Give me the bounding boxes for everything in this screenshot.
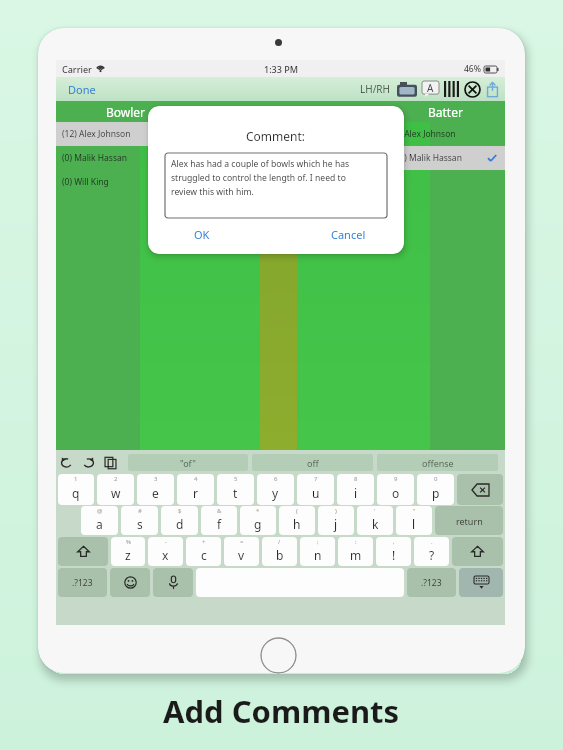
- staticText: x: [162, 547, 169, 563]
- button[interactable]: %: [111, 537, 145, 566]
- button[interactable]: LH/RH: [358, 79, 392, 99]
- button[interactable]: Redo: [82, 456, 95, 469]
- button[interactable]: =: [224, 537, 259, 566]
- button[interactable]: 8: [337, 474, 374, 505]
- button[interactable]: 1: [58, 474, 94, 505]
- staticText: m: [350, 547, 362, 563]
- button[interactable]: Camera: [397, 82, 417, 97]
- button[interactable]: (0) Alex Johnson: [385, 122, 505, 146]
- staticText: Alex has had a couple of bowls which he …: [171, 158, 350, 170]
- button[interactable]: &: [201, 506, 237, 535]
- button[interactable]: Stumps: [444, 81, 459, 97]
- staticText: (0) Alex Johnson: [392, 128, 456, 140]
- button[interactable]: 9: [377, 474, 414, 505]
- button[interactable]: #: [121, 506, 158, 535]
- button[interactable]: 0: [417, 474, 454, 505]
- button[interactable]: Emoji: [110, 568, 150, 597]
- button[interactable]: .?123: [58, 568, 107, 597]
- button[interactable]: Undo: [60, 456, 73, 469]
- button[interactable]: .?123: [407, 568, 456, 597]
- staticText: r: [193, 485, 198, 501]
- button[interactable]: Copy: [104, 456, 117, 469]
- button[interactable]: ;: [300, 537, 335, 566]
- button[interactable]: 6: [257, 474, 294, 505]
- staticText: (0) Malik Hassan: [62, 152, 128, 164]
- button[interactable]: Shift: [58, 537, 108, 566]
- button[interactable]: +: [186, 537, 221, 566]
- staticText: off: [307, 457, 319, 469]
- staticText: j: [334, 516, 338, 532]
- staticText: 4: [194, 475, 198, 483]
- staticText: ,: [393, 538, 395, 546]
- button[interactable]: (: [279, 506, 315, 535]
- button[interactable]: ): [318, 506, 354, 535]
- staticText: n: [314, 547, 322, 563]
- staticText: (12) Malik Hassan: [392, 152, 462, 164]
- staticText: ': [374, 507, 376, 515]
- button[interactable]: Shift: [452, 537, 503, 566]
- staticText: b: [276, 547, 284, 563]
- button[interactable]: Hide keyboard: [459, 568, 503, 597]
- button[interactable]: ": [396, 506, 432, 535]
- button[interactable]: 3: [137, 474, 174, 505]
- staticText: (12) Alex Johnson: [62, 128, 131, 140]
- staticText: struggled to control the length of. I ne…: [171, 172, 346, 184]
- button[interactable]: Share: [486, 81, 499, 97]
- button[interactable]: @: [81, 506, 118, 535]
- staticText: Carrier: [62, 63, 92, 75]
- staticText: 0: [434, 475, 438, 483]
- button[interactable]: return: [435, 506, 503, 535]
- staticText: ): [335, 507, 337, 515]
- button[interactable]: Done: [64, 79, 100, 100]
- staticText: review this with him.: [171, 186, 254, 198]
- staticText: (: [296, 507, 298, 515]
- button[interactable]: offense: [377, 454, 498, 471]
- staticText: =: [240, 538, 244, 546]
- staticText: o: [392, 485, 400, 501]
- button[interactable]: Alex has had a couple of bowls which he …: [165, 153, 387, 218]
- staticText: (0) Will King: [62, 176, 109, 188]
- button[interactable]: 4: [177, 474, 214, 505]
- staticText: Comment:: [246, 128, 306, 144]
- button[interactable]: Text: [422, 81, 439, 97]
- staticText: c: [201, 547, 207, 563]
- button[interactable]: (12) Malik Hassan: [385, 146, 505, 170]
- button[interactable]: "of": [128, 454, 248, 471]
- button[interactable]: Cancel: [276, 227, 404, 242]
- staticText: A: [427, 81, 434, 95]
- staticText: Done: [68, 82, 96, 97]
- staticText: d: [176, 516, 184, 532]
- button[interactable]: /: [262, 537, 297, 566]
- button[interactable]: ,: [376, 537, 411, 566]
- staticText: OK: [194, 227, 210, 242]
- button[interactable]: off: [252, 454, 373, 471]
- button[interactable]: ': [357, 506, 393, 535]
- staticText: 2: [114, 475, 118, 483]
- button[interactable]: $: [161, 506, 198, 535]
- button[interactable]: Backspace: [457, 474, 503, 505]
- button[interactable]: Dictation: [153, 568, 193, 597]
- staticText: LH/RH: [360, 82, 390, 96]
- button[interactable]: 5: [217, 474, 254, 505]
- button[interactable]: -: [148, 537, 183, 566]
- staticText: 6: [274, 475, 278, 483]
- button[interactable]: (0) Will King: [56, 170, 196, 194]
- button[interactable]: OK: [148, 227, 276, 242]
- staticText: q: [72, 485, 80, 501]
- button[interactable]: (12) Alex Johnson: [56, 122, 196, 146]
- button[interactable]: 2: [97, 474, 134, 505]
- staticText: t: [233, 485, 238, 501]
- button[interactable]: 7: [297, 474, 334, 505]
- button[interactable]: :: [338, 537, 373, 566]
- staticText: -: [165, 538, 167, 546]
- staticText: 3: [154, 475, 158, 483]
- staticText: h: [293, 516, 301, 532]
- staticText: Bowler: [106, 104, 146, 120]
- button[interactable]: .: [414, 537, 449, 566]
- staticText: +: [202, 538, 206, 546]
- staticText: l: [412, 516, 416, 532]
- button[interactable]: (0) Malik Hassan: [56, 146, 196, 170]
- button[interactable]: *: [240, 506, 276, 535]
- button[interactable]: Clear: [464, 81, 481, 98]
